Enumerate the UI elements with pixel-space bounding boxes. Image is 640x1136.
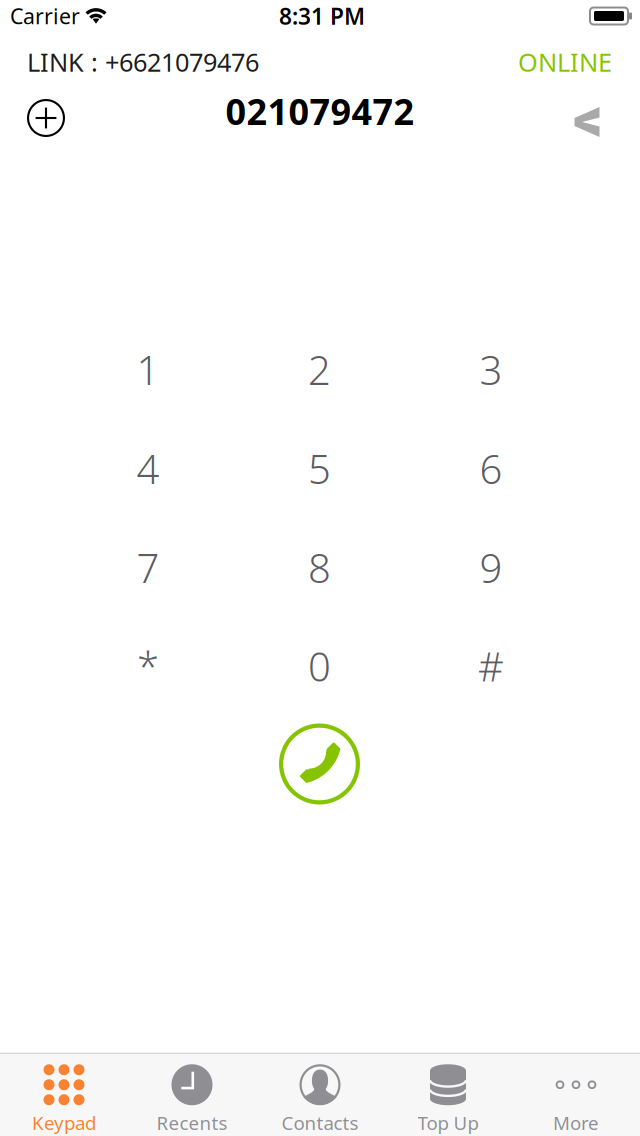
staticText: Keypad [32, 1110, 96, 1135]
button[interactable]: More [512, 1054, 640, 1136]
button[interactable]: # [406, 617, 576, 715]
staticText: Top Up [417, 1110, 478, 1135]
staticText: * [137, 639, 159, 692]
button[interactable]: 7 [63, 518, 233, 616]
button[interactable]: 8 [234, 518, 404, 616]
staticText: # [478, 639, 504, 692]
staticText: 2 [308, 343, 331, 396]
staticText: 9 [479, 541, 502, 594]
button[interactable]: Delete digit [561, 94, 612, 150]
staticText: Carrier [10, 2, 80, 30]
staticText: 3 [479, 343, 502, 396]
button[interactable]: 3 [406, 320, 576, 418]
staticText: 4 [136, 442, 159, 495]
staticText: 7 [136, 541, 159, 594]
button[interactable]: * [63, 617, 233, 715]
button[interactable]: Recents [128, 1054, 256, 1136]
staticText: Contacts [281, 1110, 358, 1135]
button[interactable]: 5 [234, 419, 404, 517]
button[interactable]: Add contact [16, 88, 76, 148]
button[interactable]: 2 [234, 320, 404, 418]
staticText: Recents [156, 1110, 227, 1135]
button[interactable]: Top Up [384, 1054, 512, 1136]
staticText: 6 [479, 442, 502, 495]
button[interactable]: 1 [63, 320, 233, 418]
button[interactable]: 9 [406, 518, 576, 616]
button[interactable]: 6 [406, 419, 576, 517]
staticText: LINK : +6621079476 [27, 45, 259, 79]
button[interactable]: 4 [63, 419, 233, 517]
staticText: 021079472 [225, 87, 414, 135]
staticText: 1 [136, 343, 159, 396]
button[interactable]: Call [269, 714, 369, 814]
button[interactable]: Contacts [256, 1054, 384, 1136]
button[interactable]: 0 [234, 617, 404, 715]
staticText: 8:31 PM [279, 1, 365, 31]
staticText: 0 [308, 639, 331, 692]
staticText: 5 [308, 442, 331, 495]
button[interactable]: Keypad [0, 1054, 128, 1136]
staticText: 8 [308, 541, 331, 594]
staticText: ONLINE [518, 45, 612, 79]
staticText: More [553, 1110, 599, 1135]
